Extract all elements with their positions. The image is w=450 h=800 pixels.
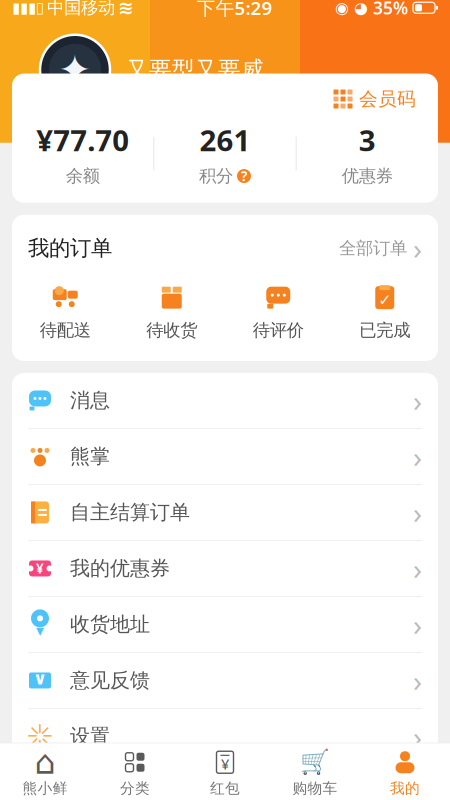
staticText: 分类	[120, 779, 150, 797]
button[interactable]: 3	[297, 120, 438, 187]
staticText: ›	[413, 661, 422, 700]
staticText: 积分	[199, 165, 233, 187]
staticText: 熊小鲜	[22, 779, 67, 797]
staticText: 我的	[390, 779, 420, 797]
staticText: ≋	[118, 0, 134, 18]
button[interactable]: ▾	[12, 597, 438, 653]
button[interactable]: 熊掌	[12, 429, 438, 485]
staticText: 优惠券	[342, 165, 393, 187]
staticText: 消息	[70, 388, 110, 413]
staticText: 待配送	[40, 320, 91, 341]
staticText: ¥77.70	[36, 120, 129, 159]
button[interactable]: ¥77.70	[12, 120, 153, 187]
staticText: ∨	[33, 669, 47, 688]
staticText: 收货地址	[70, 612, 150, 637]
button[interactable]: 分类	[90, 750, 180, 797]
staticText: ◉	[335, 0, 349, 17]
button[interactable]: 自主结算订单	[12, 485, 438, 541]
button[interactable]: 我的	[360, 750, 450, 797]
staticText: ▮▮▮▯	[12, 0, 44, 16]
staticText: 3	[359, 120, 376, 159]
button[interactable]: 待评价	[225, 284, 331, 341]
staticText: ›	[413, 437, 422, 476]
staticText: ›	[413, 605, 422, 644]
staticText: ›	[413, 381, 422, 420]
staticText: ›	[413, 717, 422, 756]
button[interactable]: ¥	[12, 541, 438, 597]
button[interactable]: 全部订单	[339, 229, 422, 268]
staticText: ¥	[36, 560, 44, 577]
staticText: ✓	[378, 291, 391, 309]
button[interactable]: 261	[154, 120, 296, 187]
button[interactable]: ¥	[180, 750, 270, 797]
staticText: 设置	[70, 724, 110, 749]
button[interactable]: 会员码	[329, 85, 420, 112]
staticText: 35%	[373, 0, 408, 19]
staticText: ⌂	[34, 743, 55, 781]
staticText: 购物车	[292, 779, 337, 797]
staticText: 下午5:29	[196, 0, 272, 20]
staticText: ›	[413, 229, 422, 268]
button[interactable]: 消息	[12, 373, 438, 429]
button[interactable]: 待收货	[118, 284, 225, 341]
staticText: 自主结算订单	[70, 500, 190, 525]
staticText: ?	[241, 167, 247, 185]
staticText: ✳	[26, 718, 53, 755]
staticText: 余额	[66, 165, 100, 187]
staticText: 熊掌	[70, 444, 110, 469]
button[interactable]: 🛒	[270, 750, 360, 797]
button[interactable]: ✳	[12, 709, 438, 764]
staticText: 又要型又要威	[126, 56, 264, 84]
staticText: 我的订单	[28, 235, 112, 261]
button[interactable]: ⌂	[0, 750, 90, 797]
staticText: 意见反馈	[70, 668, 150, 693]
staticText: ›	[413, 549, 422, 588]
staticText: ✦	[58, 47, 92, 92]
staticText: ›	[413, 493, 422, 532]
staticText: 已完成	[359, 320, 410, 341]
staticText: ¥	[221, 754, 229, 773]
button[interactable]: 待配送	[12, 284, 118, 341]
staticText: 🛒	[300, 748, 330, 776]
staticText: ◕	[354, 0, 368, 17]
staticText: 待评价	[253, 320, 304, 341]
staticText: 待收货	[146, 320, 197, 341]
staticText: 我的优惠券	[70, 556, 170, 581]
button[interactable]: ✓	[331, 284, 438, 341]
staticText: ▾	[36, 621, 44, 640]
button[interactable]: ∨	[12, 653, 438, 709]
staticText: 261	[199, 120, 250, 159]
staticText: 全部订单	[339, 237, 407, 259]
staticText: 中国移动	[47, 0, 115, 18]
staticText: 会员码	[359, 87, 416, 110]
staticText: 红包	[210, 779, 240, 797]
